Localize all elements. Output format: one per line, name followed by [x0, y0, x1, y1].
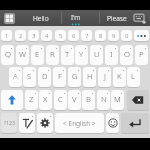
staticText: G [72, 71, 78, 82]
button[interactable]: Please [103, 10, 131, 26]
button[interactable]: Hello [26, 10, 56, 26]
staticText: K [117, 71, 122, 82]
button[interactable]: 7 [81, 30, 92, 41]
button[interactable] [19, 113, 35, 133]
staticText: U [94, 49, 100, 60]
button[interactable]: M [111, 90, 124, 110]
button[interactable]: R [46, 45, 59, 65]
staticText: 7 [85, 32, 89, 40]
staticText: X [43, 94, 48, 105]
button[interactable]: G [68, 67, 81, 87]
button[interactable] [37, 113, 53, 133]
staticText: H [87, 71, 93, 82]
button[interactable]: Z [25, 90, 38, 110]
staticText: 8 [99, 32, 103, 40]
button[interactable]: I'm [64, 10, 88, 24]
button[interactable]: F [53, 67, 66, 87]
button[interactable] [4, 13, 15, 24]
button[interactable]: B [82, 90, 95, 110]
button[interactable] [127, 90, 149, 110]
staticText: W [19, 49, 27, 60]
staticText: 6 [72, 32, 76, 40]
staticText: T [65, 49, 70, 60]
button[interactable]: T [61, 45, 74, 65]
staticText: E [35, 49, 40, 60]
staticText: ?123 [4, 120, 15, 127]
button[interactable]: 8 [95, 30, 106, 41]
staticText: O [124, 49, 130, 60]
button[interactable]: E [31, 45, 44, 65]
button[interactable]: A [9, 67, 22, 87]
button[interactable]: I [105, 45, 118, 65]
staticText: N [101, 94, 107, 105]
button[interactable]: S [23, 67, 36, 87]
button[interactable]: 3 [28, 30, 39, 41]
button[interactable]: J [98, 67, 111, 87]
button[interactable] [106, 113, 119, 133]
button[interactable]: L [127, 67, 140, 87]
staticText: B [86, 94, 91, 105]
button[interactable]: K [113, 67, 126, 87]
button[interactable]: 6 [68, 30, 79, 41]
staticText: I'm [71, 13, 81, 22]
button[interactable]: D [38, 67, 51, 87]
button[interactable]: H [83, 67, 96, 87]
staticText: P [139, 49, 144, 60]
staticText: < English > [63, 119, 96, 128]
button[interactable]: Q [1, 45, 14, 65]
staticText: 4 [45, 32, 49, 40]
button[interactable]: P [135, 45, 148, 65]
staticText: Q [5, 49, 11, 60]
staticText: F [58, 71, 62, 82]
staticText: M [114, 94, 121, 105]
button[interactable] [1, 90, 23, 110]
button[interactable]: 4 [41, 30, 52, 41]
button[interactable]: 9 [108, 30, 119, 41]
button[interactable] [121, 113, 149, 133]
button[interactable] [134, 30, 149, 41]
staticText: C [58, 94, 63, 105]
button[interactable]: V [68, 90, 81, 110]
staticText: A [13, 71, 18, 82]
staticText: 3 [32, 32, 36, 40]
staticText: J [104, 71, 106, 82]
staticText: 9 [112, 32, 116, 40]
staticText: V [72, 94, 77, 105]
staticText: 0 [125, 32, 129, 40]
staticText: 1 [5, 32, 9, 40]
staticText: I [110, 49, 113, 60]
staticText: Y [79, 49, 84, 60]
staticText: Please [107, 14, 127, 23]
button[interactable]: O [120, 45, 133, 65]
button[interactable]: W [16, 45, 29, 65]
staticText: Hello [33, 14, 49, 23]
staticText: D [42, 71, 48, 82]
button[interactable]: ?123 [1, 113, 17, 133]
button[interactable]: Y [75, 45, 88, 65]
button[interactable]: < English > [55, 113, 104, 133]
staticText: Z [29, 94, 34, 105]
button[interactable]: 1 [1, 30, 12, 41]
button[interactable]: 0 [121, 30, 132, 41]
button[interactable]: 2 [15, 30, 26, 41]
staticText: L [131, 71, 136, 82]
button[interactable]: U [90, 45, 103, 65]
button[interactable] [133, 13, 147, 24]
button[interactable]: 5 [55, 30, 66, 41]
staticText: R [50, 49, 55, 60]
button[interactable]: N [97, 90, 110, 110]
staticText: S [27, 71, 32, 82]
button[interactable]: C [54, 90, 67, 110]
button[interactable]: X [39, 90, 52, 110]
staticText: 2 [19, 32, 23, 40]
staticText: 5 [59, 32, 63, 40]
